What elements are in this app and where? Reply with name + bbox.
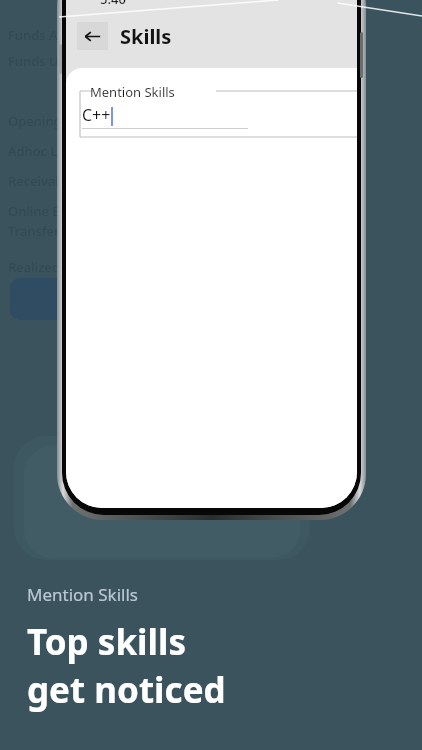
staticText: get noticed (27, 666, 226, 714)
staticText: Realized Profit (8, 258, 98, 276)
button[interactable]: Mention Skills (80, 85, 357, 143)
staticText: Funds Used (8, 52, 81, 70)
staticText: Online Bank (8, 202, 84, 220)
staticText: Skills (120, 23, 172, 50)
staticText: Top skills (27, 618, 187, 666)
staticText: Receivables (8, 172, 81, 190)
staticText: Opening Balance (8, 112, 114, 130)
staticText: C++ (82, 104, 111, 126)
staticText: Mention Skills (90, 83, 175, 101)
staticText: Funds Available (8, 26, 106, 44)
staticText: Mention Skills (27, 583, 138, 606)
staticText: 5:40 (100, 0, 126, 8)
staticText: Adhoc Limit (8, 142, 82, 160)
button[interactable]: Back (77, 22, 108, 50)
staticText: Transfer (8, 222, 60, 240)
